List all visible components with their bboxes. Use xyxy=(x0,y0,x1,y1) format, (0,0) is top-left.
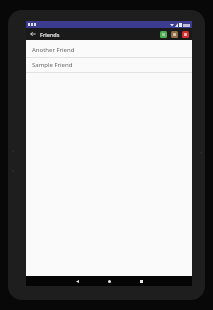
button[interactable]: Navigate up xyxy=(26,28,40,40)
staticText: Another Friend xyxy=(32,46,75,54)
staticText: Friends xyxy=(40,31,60,38)
button[interactable]: Another Friend xyxy=(26,43,192,57)
button[interactable]: Back xyxy=(66,276,88,286)
staticText: Sample Friend xyxy=(32,61,73,69)
button[interactable]: Settings xyxy=(181,30,189,38)
button[interactable]: Sample Friend xyxy=(26,58,192,72)
button[interactable]: Home xyxy=(170,30,178,38)
button[interactable]: Add friend xyxy=(159,30,167,38)
button[interactable]: Home xyxy=(98,276,120,286)
button[interactable]: Recent apps xyxy=(130,276,152,286)
